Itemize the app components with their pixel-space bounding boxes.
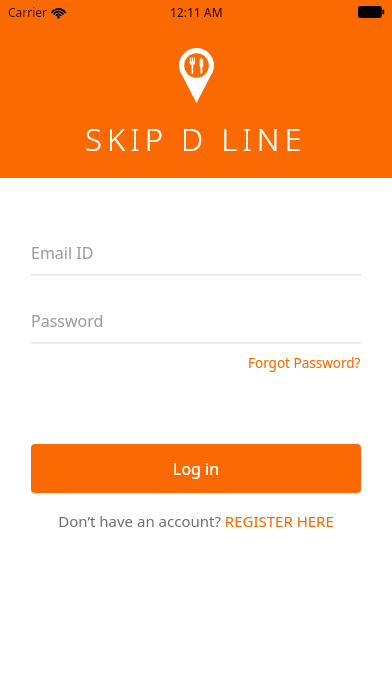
staticText: Log in <box>173 458 220 480</box>
staticText: Password <box>31 310 104 332</box>
button[interactable]: Password <box>31 308 361 344</box>
staticText: Email ID <box>31 242 94 264</box>
staticText: Forgot Password? <box>248 354 361 372</box>
button[interactable]: Email ID <box>31 240 361 276</box>
button[interactable]: Don’t have an account? REGISTER HERE <box>31 507 361 535</box>
button[interactable]: Forgot Password? <box>248 350 361 376</box>
staticText: 12:11 AM <box>170 4 223 20</box>
staticText: Don’t have an account? REGISTER HERE <box>58 511 334 531</box>
staticText: Carrier <box>8 4 48 20</box>
staticText: SKIP D LINE <box>85 118 307 160</box>
button[interactable]: Log in <box>31 444 361 493</box>
